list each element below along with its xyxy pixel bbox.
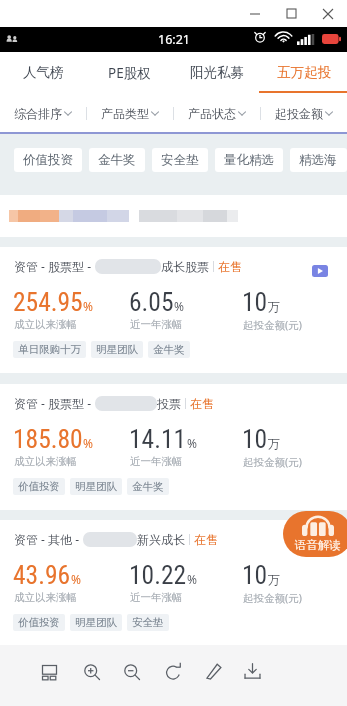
staticText: 阳光私募: [190, 64, 244, 81]
button[interactable]: 资管 - 其他 -: [0, 520, 347, 645]
staticText: %: [174, 298, 184, 314]
button[interactable]: 综合排序: [0, 93, 86, 134]
staticText: 成立以来涨幅: [14, 318, 77, 331]
staticText: 成立以来涨幅: [14, 455, 77, 468]
button[interactable]: Zoom in: [76, 658, 108, 686]
button[interactable]: Download: [236, 657, 269, 685]
staticText: 五万起投: [277, 64, 331, 81]
staticText: 语音解读: [295, 538, 341, 552]
button[interactable]: Rotate: [158, 658, 190, 686]
button[interactable]: 起投金额: [260, 93, 347, 134]
staticText: 精选海外: [299, 152, 338, 168]
button[interactable]: 资管 - 股票型 -: [0, 384, 347, 510]
staticText: %: [83, 298, 93, 314]
staticText: 10: [242, 287, 268, 317]
staticText: %: [71, 571, 81, 587]
button[interactable]: Close: [309, 0, 347, 27]
staticText: %: [187, 435, 197, 451]
staticText: 产品类型: [101, 106, 149, 121]
staticText: 安全垫: [132, 616, 164, 629]
staticText: 在售: [190, 396, 214, 411]
staticText: 10: [242, 560, 268, 590]
button[interactable]: 量化精选: [215, 148, 283, 172]
button[interactable]: Maximize: [273, 0, 309, 27]
staticText: 新兴成长: [137, 532, 185, 547]
staticText: 近一年涨幅: [130, 591, 183, 604]
staticText: 10: [242, 424, 268, 454]
staticText: 金牛奖: [98, 152, 136, 168]
button[interactable]: PE股权: [86, 52, 173, 93]
staticText: 万: [268, 572, 280, 587]
staticText: 价值投资: [18, 616, 60, 629]
button[interactable]: 价值投资: [14, 148, 82, 172]
button[interactable]: 产品类型: [86, 93, 173, 134]
staticText: 综合排序: [14, 106, 62, 121]
staticText: %: [83, 435, 93, 451]
staticText: 起投金额(元): [243, 591, 302, 605]
staticText: 14.11: [129, 424, 187, 454]
button[interactable]: 资管 - 股票型 -: [0, 247, 347, 373]
staticText: 6.05: [129, 287, 174, 317]
staticText: 10.22: [129, 560, 187, 590]
staticText: 金牛奖: [153, 343, 185, 356]
staticText: 万: [268, 299, 280, 314]
staticText: PE股权: [108, 64, 151, 82]
button[interactable]: 人气榜: [0, 52, 86, 93]
button[interactable]: 安全垫: [152, 148, 208, 172]
button[interactable]: Edit: [198, 657, 230, 685]
staticText: 产品状态: [188, 106, 236, 121]
staticText: 成立以来涨幅: [14, 591, 77, 604]
staticText: 起投金额(元): [243, 455, 302, 469]
staticText: 明星团队: [96, 343, 138, 356]
staticText: %: [187, 571, 197, 587]
button[interactable]: 五万起投: [260, 52, 347, 93]
staticText: 资管 - 股票型 -: [14, 395, 95, 411]
button[interactable]: 阳光私募: [173, 52, 260, 93]
button[interactable]: Minimize: [237, 0, 273, 27]
staticText: 万: [268, 436, 280, 451]
staticText: 量化精选: [224, 152, 274, 168]
staticText: 起投金额: [275, 106, 323, 121]
staticText: 16:21: [158, 31, 190, 48]
button[interactable]: 语音解读: [283, 511, 347, 557]
staticText: 明星团队: [75, 616, 117, 629]
button[interactable]: 金牛奖: [89, 148, 145, 172]
staticText: 价值投资: [18, 480, 60, 493]
staticText: 起投金额(元): [243, 318, 302, 332]
staticText: 资管 - 其他 -: [14, 531, 83, 547]
button[interactable]: 产品状态: [173, 93, 260, 134]
button[interactable]: Zoom out: [116, 658, 148, 686]
staticText: 单日限购十万: [18, 343, 81, 356]
staticText: 资管 - 股票型 -: [14, 258, 95, 274]
button[interactable]: 精选海外: [290, 148, 347, 172]
staticText: 254.95: [13, 287, 83, 317]
staticText: 明星团队: [75, 480, 117, 493]
staticText: 价值投资: [23, 152, 73, 168]
staticText: 成长股票: [161, 259, 209, 274]
staticText: 近一年涨幅: [130, 318, 183, 331]
staticText: 在售: [218, 259, 242, 274]
staticText: 在售: [194, 532, 218, 547]
staticText: 185.80: [13, 424, 83, 454]
staticText: 投票: [157, 396, 181, 411]
staticText: 人气榜: [23, 64, 64, 81]
staticText: 安全垫: [161, 152, 199, 168]
staticText: 43.96: [13, 560, 71, 590]
staticText: 金牛奖: [132, 480, 164, 493]
button[interactable]: Layout: [34, 659, 65, 686]
staticText: 近一年涨幅: [130, 455, 183, 468]
button[interactable]: Play video: [312, 265, 328, 277]
